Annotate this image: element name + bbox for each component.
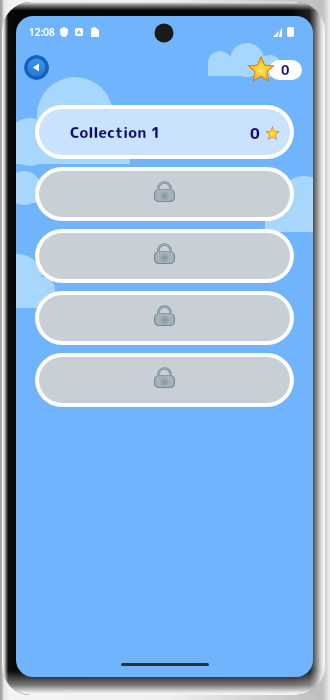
- staticText: 12:08: [29, 25, 55, 39]
- button[interactable]: Locked collection: [39, 357, 290, 403]
- button[interactable]: Locked collection: [39, 171, 290, 217]
- button[interactable]: Back: [24, 55, 49, 80]
- button[interactable]: Stars: 0: [244, 56, 302, 84]
- button[interactable]: Locked collection: [39, 233, 290, 279]
- staticText: 0: [250, 123, 260, 144]
- staticText: Collection 1: [70, 122, 161, 143]
- button[interactable]: Collection 1: [39, 109, 290, 155]
- staticText: 0: [281, 61, 290, 79]
- button[interactable]: Locked collection: [39, 295, 290, 341]
